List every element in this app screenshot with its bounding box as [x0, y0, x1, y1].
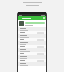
button[interactable]	[18, 62, 46, 66]
button[interactable]	[18, 41, 46, 45]
button[interactable]	[18, 48, 46, 52]
button[interactable]	[18, 31, 46, 34]
button[interactable]	[18, 45, 46, 48]
button[interactable]	[18, 34, 46, 38]
button[interactable]	[18, 27, 46, 31]
button[interactable]	[25, 22, 45, 24]
button[interactable]	[18, 59, 46, 62]
button[interactable]	[18, 38, 46, 41]
button[interactable]: Photo	[19, 21, 24, 26]
button[interactable]	[18, 55, 46, 59]
button[interactable]	[18, 52, 46, 55]
button[interactable]: Menu	[18, 16, 46, 20]
